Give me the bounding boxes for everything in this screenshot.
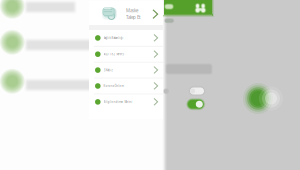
staticText: E-Nabız: [104, 68, 113, 72]
staticText: Maske: [126, 8, 138, 14]
staticText: Bilgilendirme Metni: [104, 100, 133, 104]
staticText: Korona Önlem: [104, 84, 124, 88]
button[interactable]: E-Nabız: [89, 62, 163, 78]
staticText: ALO 182 MHRS: [104, 52, 124, 56]
staticText: Talep Et: [126, 14, 141, 20]
button[interactable]: Bilgilendirme Metni: [89, 94, 163, 109]
button[interactable]: Korona Önlem: [89, 78, 163, 94]
staticText: Sağlık Bakanlığı: [104, 36, 124, 40]
button[interactable]: Maske Talep Et: [89, 1, 163, 25]
button[interactable]: ALO 182 MHRS: [89, 46, 163, 62]
button[interactable]: Sağlık Bakanlığı: [89, 30, 163, 46]
